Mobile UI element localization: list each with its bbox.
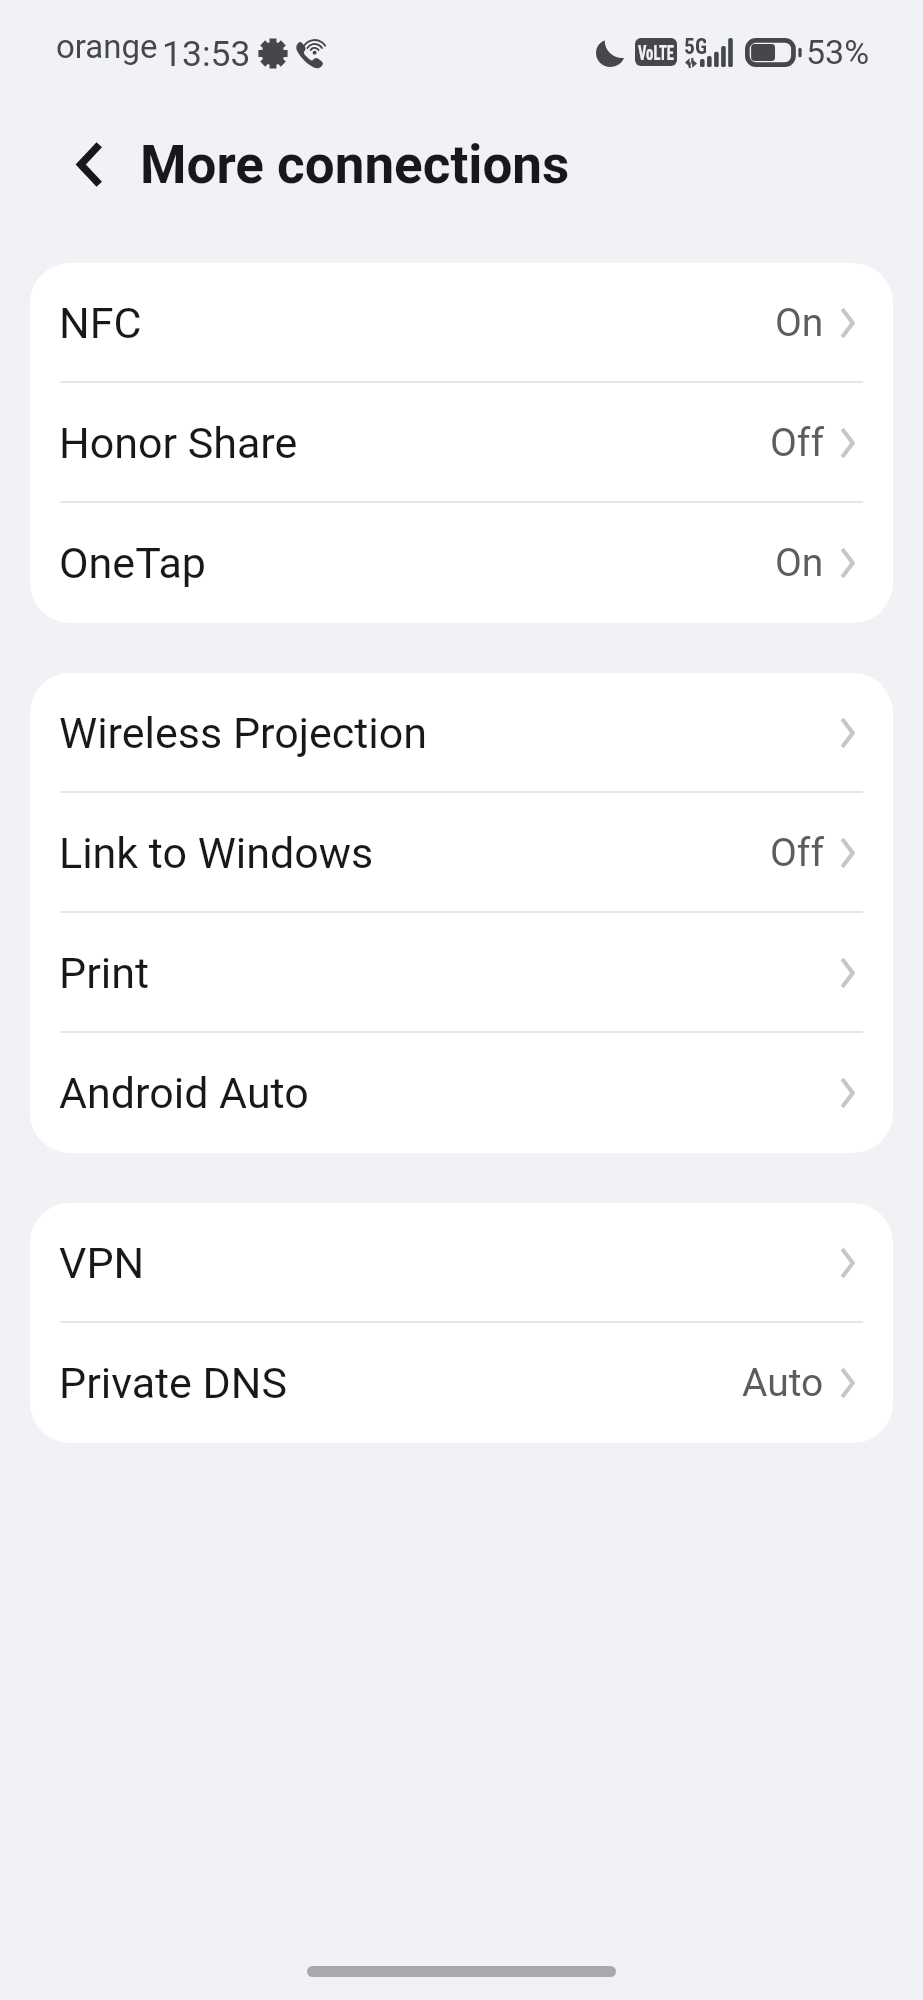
staticText: More connections <box>140 134 570 196</box>
staticText: On <box>775 300 824 346</box>
staticText: Wireless Projection <box>59 708 428 758</box>
button[interactable]: Wireless Projection <box>30 673 893 793</box>
staticText: Honor Share <box>59 418 298 468</box>
staticText: Auto <box>742 1360 824 1406</box>
staticText: 53% <box>806 32 870 72</box>
staticText: OneTap <box>59 538 206 588</box>
button[interactable]: Back <box>50 124 130 204</box>
button[interactable]: OneTap <box>30 503 893 623</box>
button[interactable]: VPN <box>30 1203 893 1323</box>
staticText: orange <box>56 27 158 66</box>
button[interactable]: Android Auto <box>30 1033 893 1153</box>
staticText: 13:53 <box>162 33 251 75</box>
staticText: Android Auto <box>59 1068 309 1118</box>
staticText: VPN <box>59 1238 145 1288</box>
staticText: Off <box>770 830 824 876</box>
button[interactable]: Print <box>30 913 893 1033</box>
staticText: 5G <box>684 34 706 59</box>
staticText: Print <box>59 948 149 998</box>
staticText: On <box>775 540 824 586</box>
button[interactable]: NFC <box>30 263 893 383</box>
staticText: Off <box>770 420 824 466</box>
staticText: Link to Windows <box>59 828 374 878</box>
staticText: Private DNS <box>59 1358 288 1408</box>
button[interactable]: Honor Share <box>30 383 893 503</box>
staticText: VoLTE <box>638 41 674 64</box>
staticText: NFC <box>59 298 142 348</box>
button[interactable]: Link to Windows <box>30 793 893 913</box>
button[interactable]: Private DNS <box>30 1323 893 1443</box>
